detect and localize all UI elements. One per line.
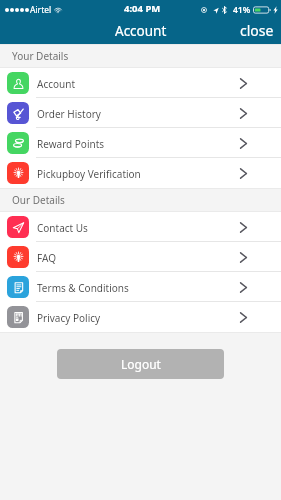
staticText: FAQ bbox=[37, 251, 56, 265]
staticText: 41% bbox=[233, 4, 251, 16]
staticText: Logout bbox=[121, 356, 161, 372]
staticText: Privacy Policy bbox=[37, 311, 101, 325]
staticText: Account bbox=[37, 77, 76, 91]
staticText: Terms & Conditions bbox=[37, 281, 129, 295]
staticText: Our Details bbox=[12, 193, 65, 207]
button[interactable]: Pickupboy Verification bbox=[0, 158, 281, 188]
button[interactable]: FAQ bbox=[0, 242, 281, 272]
staticText: Pickupboy Verification bbox=[37, 167, 141, 181]
staticText: 4:04 PM bbox=[124, 2, 161, 15]
button[interactable]: Privacy Policy bbox=[0, 302, 281, 332]
button[interactable]: Order History bbox=[0, 98, 281, 128]
staticText: Your Details bbox=[12, 49, 69, 63]
staticText: Airtel bbox=[30, 4, 52, 16]
staticText: Order History bbox=[37, 107, 101, 121]
button[interactable]: close bbox=[233, 19, 281, 44]
staticText: Reward Points bbox=[37, 137, 105, 151]
button[interactable]: Reward Points bbox=[0, 128, 281, 158]
staticText: close bbox=[240, 21, 274, 40]
button[interactable]: Account bbox=[0, 68, 281, 98]
button[interactable]: Terms & Conditions bbox=[0, 272, 281, 302]
button[interactable]: Contact Us bbox=[0, 212, 281, 242]
staticText: Account bbox=[115, 22, 167, 40]
staticText: Contact Us bbox=[37, 221, 88, 235]
button[interactable]: Logout bbox=[57, 349, 224, 379]
